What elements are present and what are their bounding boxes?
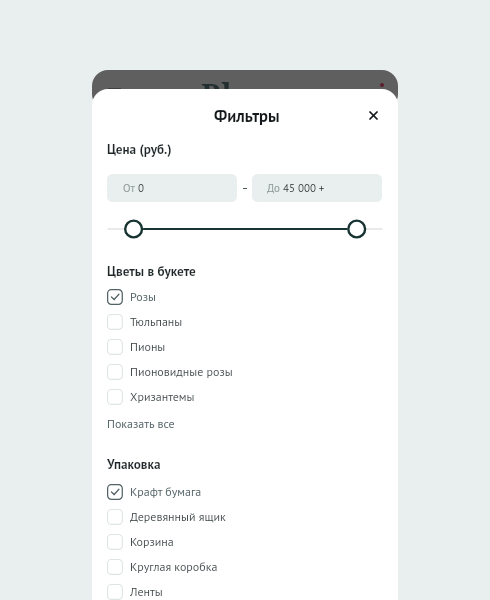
staticText: Цена (руб.) [107,141,172,158]
staticText: От [123,181,138,195]
button[interactable]: Крафт бумага [107,479,383,504]
button[interactable]: Розы [107,284,383,309]
staticText: Пионы [130,339,166,355]
staticText: 45 000 + [283,181,325,195]
button[interactable]: Хризантемы [107,384,383,409]
button[interactable]: Price range [107,218,383,240]
staticText: Bl [201,74,232,110]
button[interactable]: Деревянный ящик [107,504,383,529]
button[interactable]: Пионы [107,334,383,359]
staticText: Розы [130,289,156,305]
button[interactable]: Показать все [107,416,175,432]
button[interactable]: Тюльпаны [107,309,383,334]
button[interactable]: До [252,174,382,202]
staticText: Фильтры [214,105,280,126]
button[interactable]: Пионовидные розы [107,359,383,384]
staticText: 0 [138,181,144,195]
staticText: Пионовидные розы [130,364,233,380]
button[interactable]: Корзина [107,529,383,554]
button[interactable]: От [107,174,237,202]
staticText: Деревянный ящик [130,509,226,525]
button[interactable]: Круглая коробка [107,554,383,579]
staticText: Упаковка [107,456,161,473]
staticText: До [267,181,283,195]
staticText: Круглая коробка [130,559,218,575]
staticText: Ленты [130,584,163,600]
button[interactable]: Close [359,101,387,129]
staticText: Корзина [130,534,174,550]
button[interactable]: Ленты [107,579,383,600]
staticText: Хризантемы [130,389,195,405]
staticText: Цветы в букете [107,263,196,280]
staticText: Крафт бумага [130,484,202,500]
staticText: Показать все [107,416,175,432]
staticText: Тюльпаны [130,314,183,330]
